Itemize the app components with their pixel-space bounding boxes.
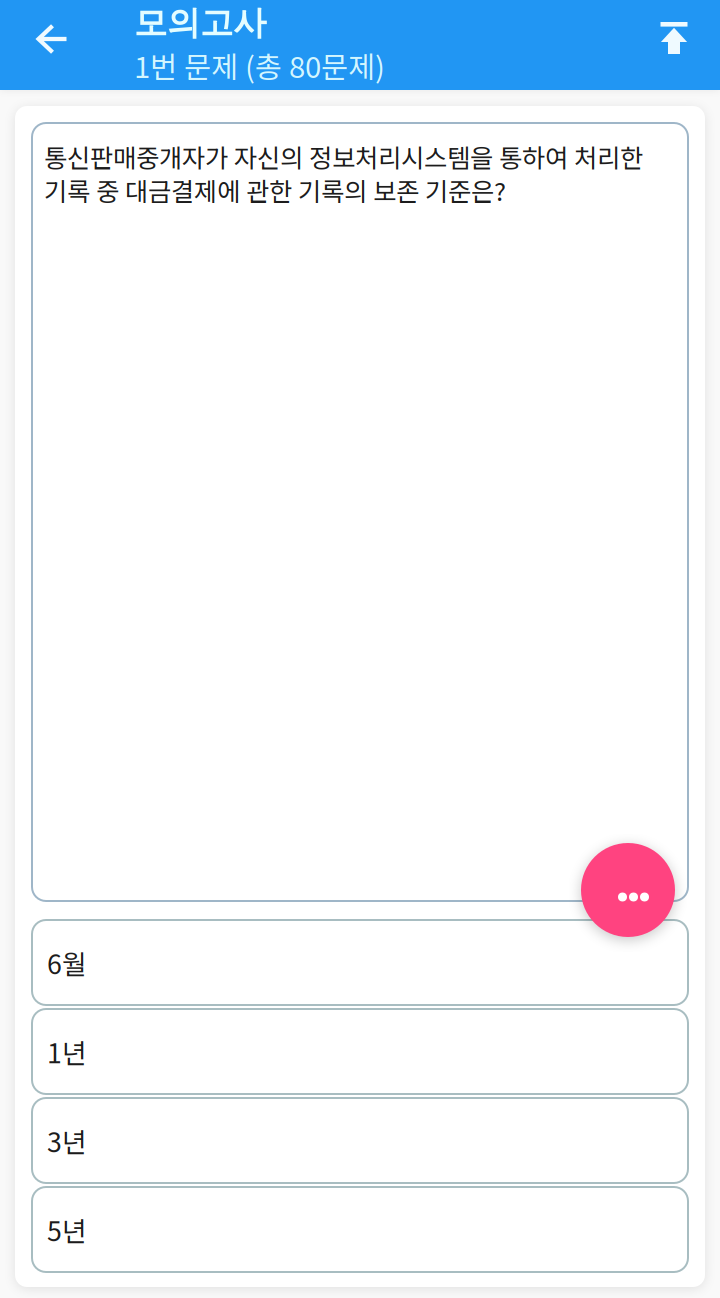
staticText: 통신판매중개자가 자신의 정보처리시스템을 통하여 처리한: [44, 138, 643, 175]
staticText: 6월: [47, 943, 87, 982]
staticText: 1번 문제 (총 80문제): [134, 44, 385, 86]
button[interactable]: 1년: [32, 1009, 688, 1094]
button[interactable]: Submit exam: [629, 0, 719, 76]
button[interactable]: 5년: [32, 1187, 688, 1272]
staticText: 기록 중 대금결제에 관한 기록의 보존 기준은?: [44, 172, 506, 208]
staticText: 1년: [47, 1032, 87, 1071]
staticText: 5년: [47, 1210, 87, 1249]
staticText: 모의고사: [134, 2, 266, 44]
button[interactable]: 3년: [32, 1098, 688, 1183]
button[interactable]: Back: [0, 0, 104, 78]
button[interactable]: 6월: [32, 920, 688, 1005]
staticText: 3년: [47, 1121, 87, 1160]
button[interactable]: More options: [581, 843, 675, 937]
